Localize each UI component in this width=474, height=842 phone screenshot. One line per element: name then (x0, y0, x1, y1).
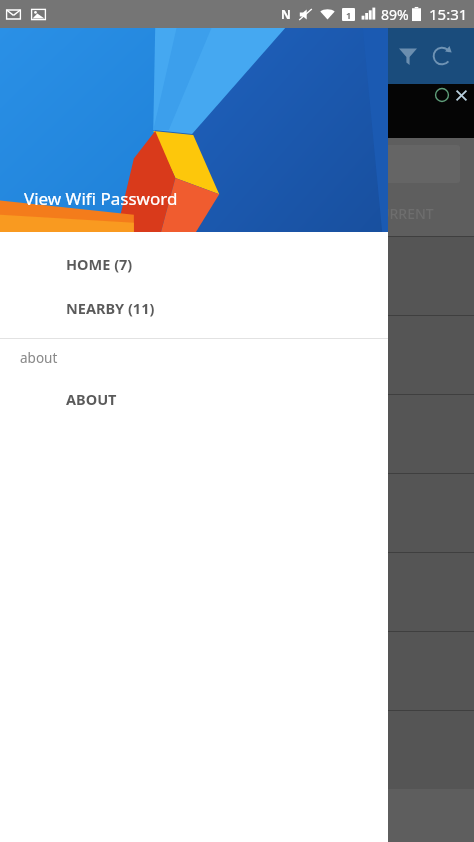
staticText: HOME (7) (66, 254, 133, 274)
button[interactable] (300, 145, 460, 183)
staticText: CURRENT (370, 204, 434, 223)
button[interactable] (0, 237, 474, 315)
button[interactable] (0, 711, 474, 789)
button[interactable] (0, 553, 474, 631)
button[interactable]: Filter (390, 38, 426, 74)
button[interactable]: HOME (7) (0, 242, 388, 286)
button[interactable] (0, 474, 474, 552)
staticText: about (20, 349, 58, 367)
button[interactable]: Ad info (434, 87, 450, 103)
button[interactable]: NEARBY (11) (0, 286, 388, 330)
button[interactable] (0, 316, 474, 394)
button[interactable]: Refresh (422, 36, 462, 76)
button[interactable]: ABOUT (0, 377, 388, 421)
staticText: 1 (346, 9, 352, 21)
staticText: ABOUT (66, 389, 117, 409)
staticText: 89% (381, 5, 409, 24)
staticText: 15:31 (429, 4, 468, 24)
staticText: N (281, 6, 291, 22)
staticText: View Wifi Password (24, 187, 178, 210)
button[interactable] (0, 395, 474, 473)
button[interactable]: Close ad (452, 86, 470, 104)
staticText: NEARBY (11) (66, 298, 155, 318)
button[interactable] (0, 632, 474, 710)
